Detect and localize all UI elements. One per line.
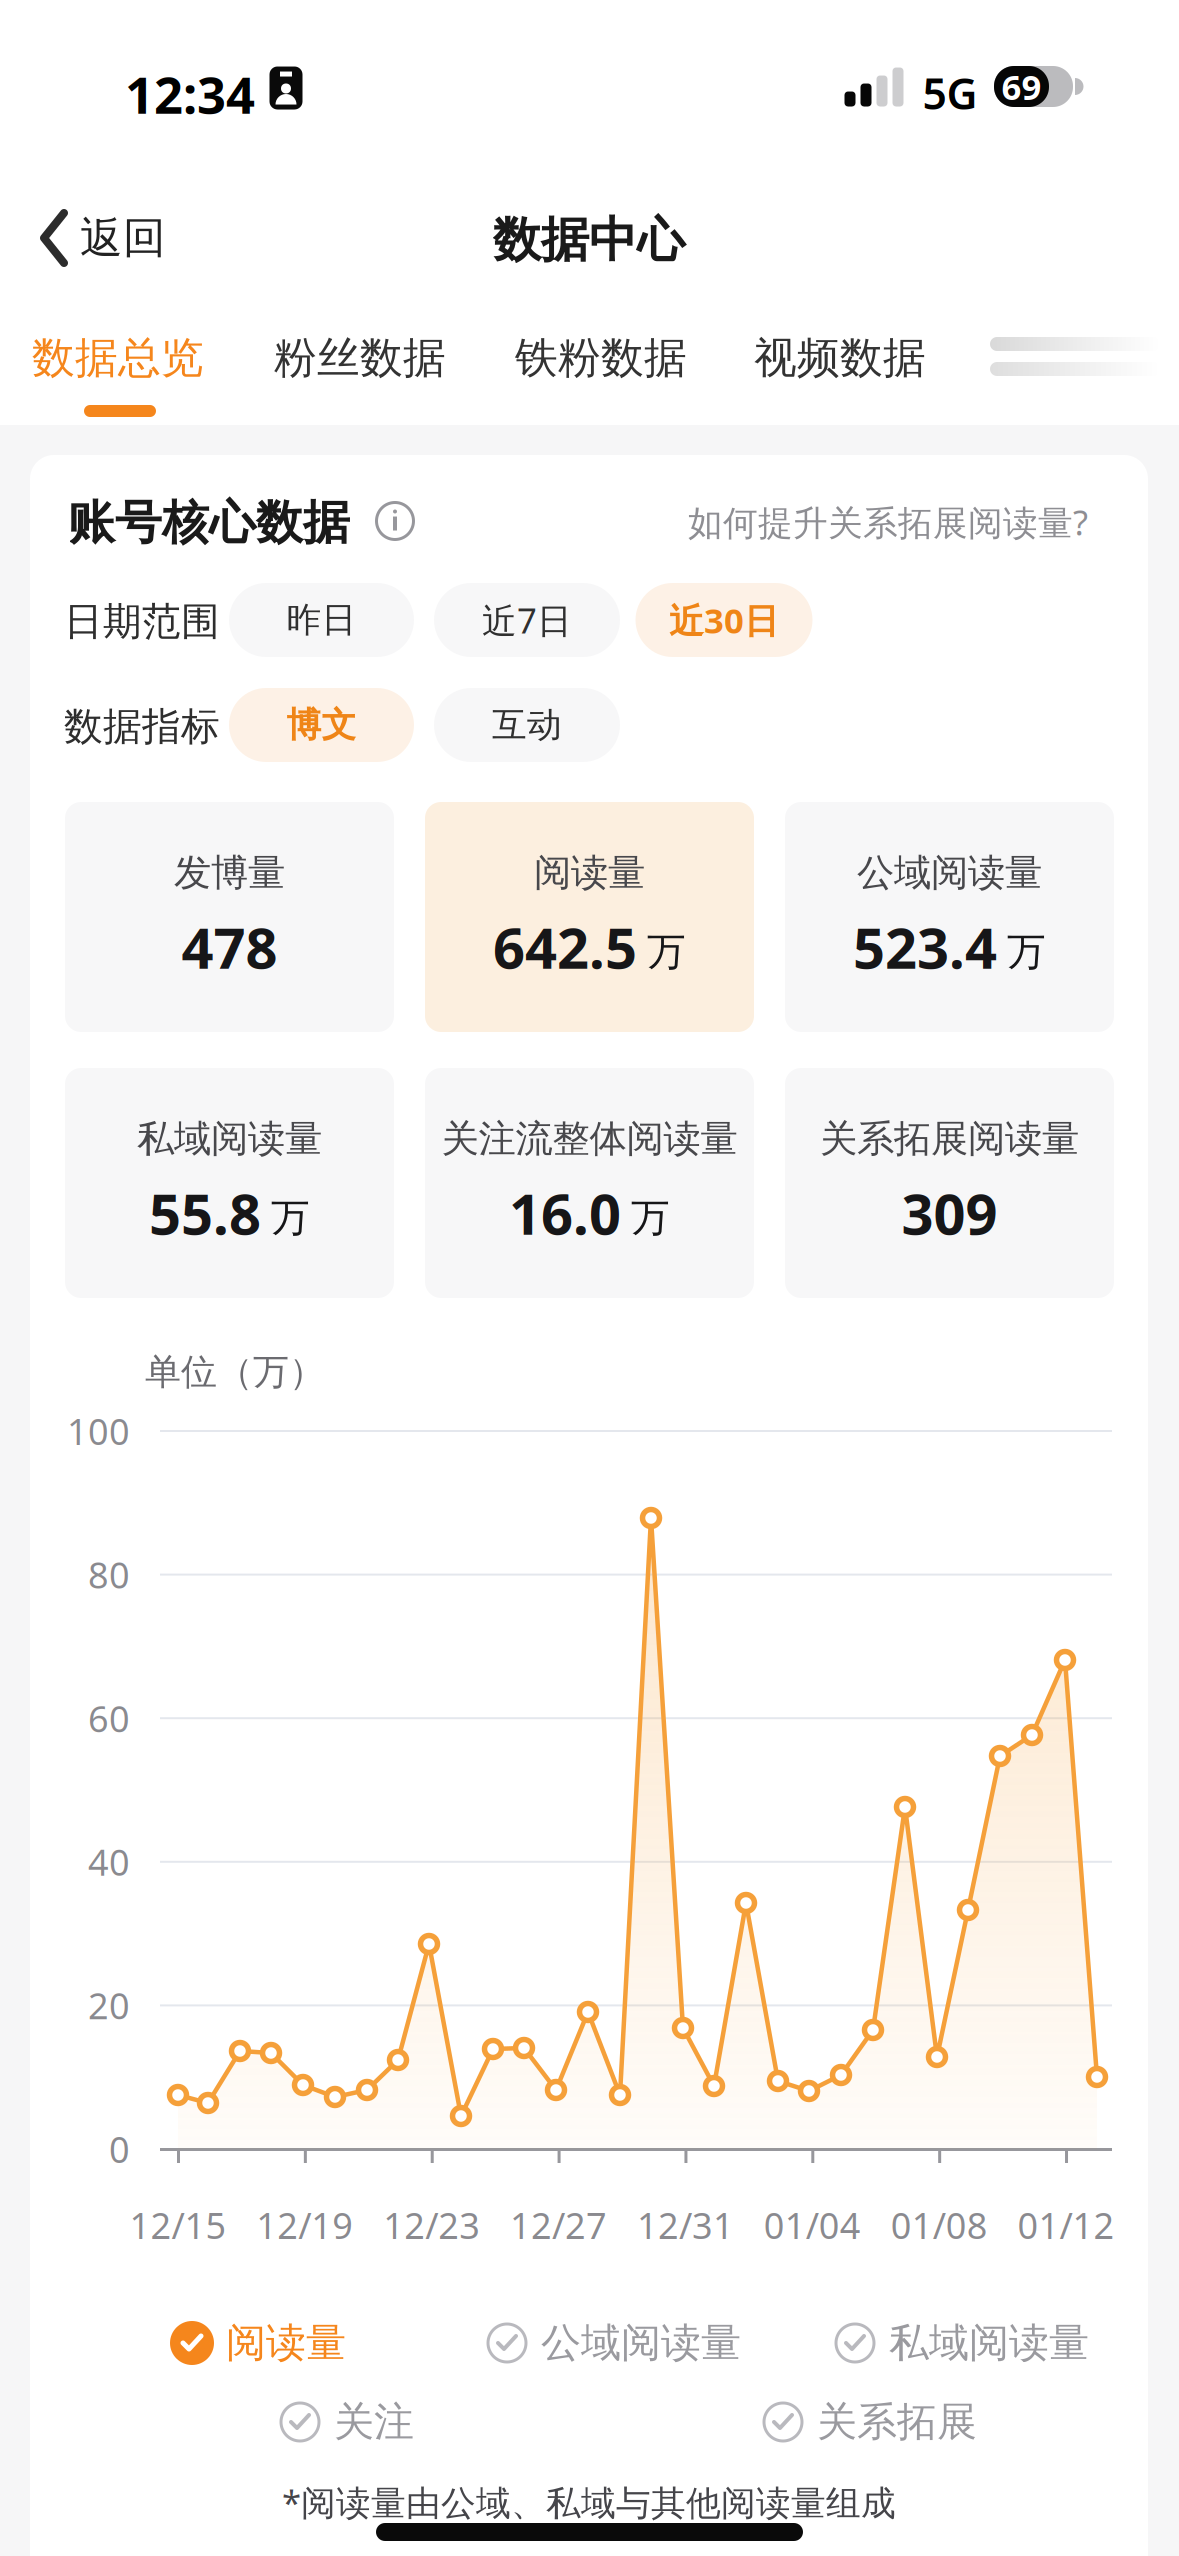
staticText: *阅读量由公域、私域与其他阅读量组成 (282, 2479, 896, 2525)
button[interactable]: 视频数据 (754, 332, 926, 384)
staticText: 60 (88, 1694, 130, 1742)
staticText: 523.4 (853, 910, 997, 984)
staticText: 近7日 (482, 597, 572, 643)
staticText: 0 (109, 2125, 130, 2173)
staticText: 55.8 (149, 1176, 261, 1250)
staticText: 01/12 (1017, 2201, 1114, 2249)
button[interactable]: 说明 (376, 502, 413, 539)
staticText: 100 (67, 1407, 130, 1455)
staticText: 01/08 (891, 2201, 988, 2249)
staticText: 数据指标 (64, 703, 220, 750)
staticText: 昨日 (286, 599, 356, 641)
staticText: 私域阅读量 (137, 1116, 322, 1162)
button[interactable]: 公域阅读量 (485, 2318, 741, 2367)
staticText: 铁粉数据 (515, 332, 687, 384)
staticText: 阅读量 (226, 2318, 346, 2367)
staticText: 数据总览 (32, 332, 204, 384)
staticText: 5G (922, 65, 977, 121)
staticText: 16.0 (509, 1176, 621, 1250)
staticText: 万 (271, 1194, 310, 1242)
staticText: 40 (88, 1838, 130, 1886)
staticText: 01/04 (764, 2201, 861, 2249)
button[interactable]: 铁粉数据 (515, 332, 687, 384)
staticText: 账号核心数据 (68, 494, 350, 551)
button[interactable]: 近7日 (434, 583, 620, 657)
staticText: 近30日 (669, 597, 779, 643)
staticText: 309 (901, 1176, 997, 1250)
staticText: 20 (88, 1981, 130, 2029)
staticText: 关注流整体阅读量 (441, 1116, 737, 1162)
staticText: 642.5 (493, 910, 637, 984)
staticText: 12/15 (129, 2201, 226, 2249)
button[interactable]: 近30日 (635, 583, 812, 657)
staticText: 12/27 (510, 2201, 607, 2249)
button[interactable]: 私域阅读量 (65, 1068, 394, 1298)
button[interactable]: 发博量 (65, 802, 394, 1032)
staticText: 私域阅读量 (889, 2318, 1089, 2367)
button[interactable]: 关注流整体阅读量 (425, 1068, 754, 1298)
staticText: 万 (631, 1194, 670, 1242)
staticText: 视频数据 (754, 332, 926, 384)
staticText: 关注 (334, 2397, 414, 2446)
button[interactable]: 如何提升关系拓展阅读量? (688, 499, 1088, 545)
staticText: 返回 (80, 212, 166, 264)
staticText: 69 (1001, 63, 1041, 109)
staticText: 关系拓展阅读量 (820, 1116, 1079, 1162)
staticText: 阅读量 (534, 850, 645, 896)
staticText: 发博量 (174, 850, 285, 896)
button[interactable]: 返回 (38, 208, 166, 268)
button[interactable]: 关注 (278, 2397, 414, 2446)
staticText: 万 (647, 928, 686, 976)
button[interactable]: 互动 (434, 688, 620, 762)
staticText: 数据中心 (493, 210, 685, 269)
staticText: 12:34 (125, 60, 255, 128)
staticText: 12/23 (383, 2201, 480, 2249)
staticText: 粉丝数据 (274, 332, 446, 384)
button[interactable]: 关系拓展阅读量 (785, 1068, 1114, 1298)
button[interactable]: 数据总览 (32, 332, 204, 384)
staticText: 公域阅读量 (541, 2318, 741, 2367)
staticText: 互动 (492, 704, 562, 746)
staticText: 80 (88, 1551, 130, 1598)
button[interactable]: 粉丝数据 (274, 332, 446, 384)
button[interactable]: 关系拓展 (761, 2397, 977, 2446)
button[interactable]: 私域阅读量 (833, 2318, 1089, 2367)
staticText: 12/31 (637, 2201, 734, 2249)
staticText: 如何提升关系拓展阅读量? (688, 499, 1088, 545)
staticText: 12/19 (256, 2201, 353, 2249)
button[interactable]: 阅读量 (425, 802, 754, 1032)
staticText: 日期范围 (64, 598, 220, 645)
button[interactable]: 博文 (229, 688, 414, 762)
staticText: 478 (181, 910, 277, 984)
staticText: 万 (1007, 928, 1046, 976)
button[interactable]: 昨日 (229, 583, 414, 657)
button[interactable]: 阅读量 (170, 2318, 346, 2367)
button[interactable]: 公域阅读量 (785, 802, 1114, 1032)
staticText: 关系拓展 (817, 2397, 977, 2446)
staticText: 公域阅读量 (857, 850, 1042, 896)
staticText: 单位（万） (145, 1350, 325, 1394)
staticText: 博文 (286, 704, 356, 746)
